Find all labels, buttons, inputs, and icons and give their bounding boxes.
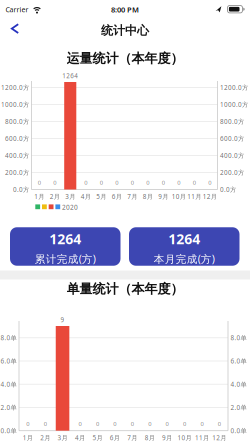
staticText: 1月 bbox=[34, 192, 44, 201]
staticText: 累计完成(方) bbox=[35, 252, 96, 266]
staticText: 2020 bbox=[62, 203, 78, 212]
staticText: 本月完成(方) bbox=[154, 252, 215, 266]
staticText: 0 bbox=[131, 420, 134, 428]
staticText: 0 bbox=[78, 420, 81, 428]
staticText: 4.0单 bbox=[230, 380, 246, 389]
staticText: 6月 bbox=[110, 433, 120, 442]
staticText: 200.0方 bbox=[5, 168, 29, 177]
staticText: 0 bbox=[193, 179, 196, 186]
staticText: 单量统计（本年度） bbox=[66, 281, 183, 297]
staticText: 10月 bbox=[177, 433, 191, 442]
staticText: 7月 bbox=[127, 192, 137, 201]
staticText: 8:00 PM bbox=[111, 4, 139, 15]
staticText: 200.0方 bbox=[220, 168, 244, 177]
staticText: 4.0单 bbox=[0, 380, 16, 389]
staticText: 0.0方 bbox=[220, 185, 236, 194]
staticText: 1264 bbox=[62, 72, 78, 80]
staticText: 4月 bbox=[75, 433, 85, 442]
staticText: 2.0单 bbox=[0, 403, 16, 412]
button[interactable]: 1264 bbox=[129, 227, 239, 266]
staticText: 0.0单 bbox=[0, 426, 16, 435]
staticText: 0.0单 bbox=[230, 426, 246, 435]
staticText: 0 bbox=[96, 420, 99, 428]
staticText: 8月 bbox=[145, 433, 155, 442]
staticText: 9 bbox=[60, 316, 64, 324]
staticText: 600.0方 bbox=[5, 134, 29, 143]
button[interactable]: 1264 bbox=[10, 227, 120, 266]
staticText: 0 bbox=[200, 420, 203, 428]
staticText: 600.0方 bbox=[220, 134, 244, 143]
staticText: 9月 bbox=[162, 433, 172, 442]
staticText: 10月 bbox=[172, 192, 186, 201]
staticText: 0 bbox=[26, 420, 29, 428]
staticText: 400.0方 bbox=[5, 151, 29, 160]
staticText: 0 bbox=[162, 179, 165, 186]
staticText: 0.0方 bbox=[13, 185, 29, 194]
staticText: 0 bbox=[146, 179, 149, 186]
staticText: 800.0方 bbox=[5, 117, 29, 126]
staticText: 12月 bbox=[212, 433, 226, 442]
staticText: 0 bbox=[208, 179, 211, 186]
staticText: 0 bbox=[115, 179, 118, 186]
staticText: 0 bbox=[177, 179, 180, 186]
staticText: 1000.0方 bbox=[220, 100, 248, 109]
staticText: 4月 bbox=[81, 192, 91, 201]
staticText: 6月 bbox=[112, 192, 122, 201]
staticText: 1264 bbox=[168, 229, 200, 248]
staticText: 7月 bbox=[127, 433, 137, 442]
staticText: 400.0方 bbox=[220, 151, 244, 160]
staticText: 3月 bbox=[57, 433, 67, 442]
button[interactable]: Back bbox=[11, 23, 20, 34]
staticText: 运量统计（本年度） bbox=[66, 50, 183, 67]
staticText: 5月 bbox=[92, 433, 102, 442]
staticText: 12月 bbox=[203, 192, 217, 201]
staticText: 6.0单 bbox=[0, 357, 16, 365]
staticText: 5月 bbox=[96, 192, 106, 201]
staticText: 0 bbox=[44, 420, 47, 428]
staticText: 0 bbox=[100, 179, 103, 186]
staticText: 8.0单 bbox=[230, 334, 246, 342]
staticText: 2.0单 bbox=[230, 403, 246, 412]
staticText: 1264 bbox=[49, 229, 81, 248]
staticText: 8月 bbox=[143, 192, 153, 201]
staticText: 0 bbox=[113, 420, 116, 428]
staticText: 1月 bbox=[23, 433, 33, 442]
staticText: 0 bbox=[131, 179, 134, 186]
staticText: 0 bbox=[38, 179, 41, 186]
staticText: 6.0单 bbox=[230, 357, 246, 365]
staticText: 9月 bbox=[158, 192, 168, 201]
staticText: 0 bbox=[148, 420, 151, 428]
staticText: 1200.0方 bbox=[1, 83, 29, 92]
staticText: 0 bbox=[165, 420, 168, 428]
staticText: 0 bbox=[53, 179, 56, 186]
staticText: 2月 bbox=[50, 192, 60, 201]
staticText: 11月 bbox=[195, 433, 209, 442]
staticText: 3月 bbox=[65, 192, 75, 201]
staticText: 800.0方 bbox=[220, 117, 244, 126]
staticText: 0 bbox=[218, 420, 221, 428]
staticText: 0 bbox=[183, 420, 186, 428]
staticText: 8.0单 bbox=[0, 334, 16, 342]
staticText: Carrier bbox=[5, 5, 28, 14]
staticText: 1200.0方 bbox=[220, 83, 248, 92]
staticText: 1000.0方 bbox=[1, 100, 29, 109]
staticText: 2月 bbox=[40, 433, 50, 442]
staticText: 11月 bbox=[187, 192, 201, 201]
staticText: 统计中心 bbox=[101, 23, 149, 38]
staticText: 0 bbox=[84, 179, 87, 186]
